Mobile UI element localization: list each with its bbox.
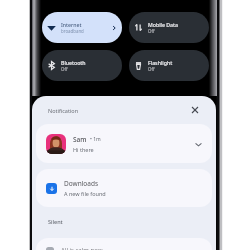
staticText: All is calm now: [61, 246, 103, 250]
staticText: Notification: [48, 107, 79, 114]
staticText: Bluetooth: [61, 59, 86, 66]
staticText: Off: [148, 66, 155, 72]
staticText: Flashlight: [148, 59, 173, 66]
staticText: A new file found: [64, 190, 106, 197]
button[interactable]: All is calm now: [36, 238, 212, 250]
button[interactable]: Bluetooth: [42, 50, 122, 81]
button[interactable]: Flashlight: [129, 50, 209, 81]
staticText: • 1m: [90, 136, 101, 143]
button[interactable]: Downloads: [36, 169, 212, 207]
staticText: Silent: [48, 218, 63, 225]
staticText: Downloads: [64, 179, 99, 188]
staticText: Sam: [73, 135, 87, 144]
button[interactable]: Expand: [193, 139, 203, 149]
staticText: broadband: [61, 28, 84, 34]
staticText: Off: [148, 28, 155, 34]
button[interactable]: Internet: [42, 12, 122, 43]
staticText: Off: [61, 66, 68, 72]
staticText: Hi there: [73, 146, 94, 153]
button[interactable]: Close notifications: [187, 102, 203, 118]
staticText: Internet: [61, 21, 82, 28]
staticText: Mobile Data: [148, 21, 178, 28]
button[interactable]: Sam: [36, 124, 212, 163]
button[interactable]: Mobile Data: [129, 12, 209, 43]
